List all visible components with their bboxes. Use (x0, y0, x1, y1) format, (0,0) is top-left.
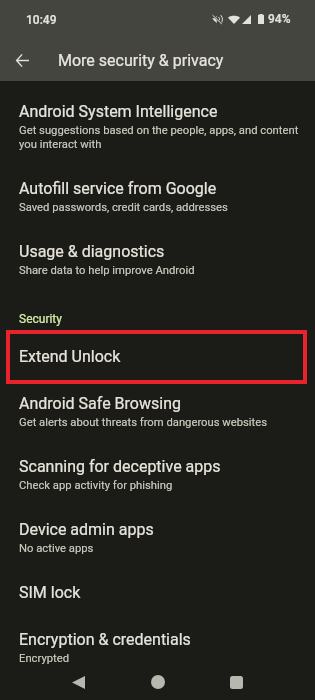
staticText: 94% (268, 12, 291, 26)
staticText: Check app activity for phishing (19, 479, 173, 492)
button[interactable]: Android System Intelligence (0, 89, 315, 166)
staticText: Device admin apps (19, 520, 154, 539)
staticText: No active apps (19, 542, 94, 555)
button[interactable]: Back (58, 664, 99, 700)
button[interactable]: Encryption & credentials (0, 617, 315, 680)
button[interactable]: Scanning for deceptive apps (0, 444, 315, 507)
button[interactable]: Home (137, 664, 178, 700)
staticText: Security (19, 312, 62, 326)
button[interactable]: Usage & diagnostics (0, 229, 315, 292)
staticText: Encryption & credentials (19, 630, 191, 649)
staticText: Autofill service from Google (19, 179, 217, 198)
staticText: Extend Unlock (19, 347, 121, 366)
staticText: Scanning for deceptive apps (19, 457, 221, 476)
button[interactable]: SIM lock (0, 570, 315, 617)
button[interactable]: Android Safe Browsing (0, 381, 315, 444)
staticText: Get suggestions based on the people, app… (19, 124, 301, 151)
button[interactable]: Recent apps (216, 664, 257, 700)
staticText: Usage & diagnostics (19, 242, 165, 261)
button[interactable]: Navigate up (3, 41, 41, 79)
button[interactable]: Autofill service from Google (0, 166, 315, 229)
staticText: 10:49 (26, 13, 57, 27)
staticText: Android Safe Browsing (19, 394, 181, 413)
staticText: More security & privacy (58, 51, 224, 70)
staticText: Android System Intelligence (19, 102, 218, 121)
button[interactable]: Extend Unlock (6, 330, 307, 384)
staticText: Encrypted (19, 652, 70, 665)
staticText: Saved passwords, credit cards, addresses (19, 201, 228, 214)
staticText: SIM lock (19, 583, 81, 602)
staticText: Share data to help improve Android (19, 264, 195, 277)
staticText: Get alerts about threats from dangerous … (19, 416, 268, 429)
button[interactable]: Device admin apps (0, 507, 315, 570)
